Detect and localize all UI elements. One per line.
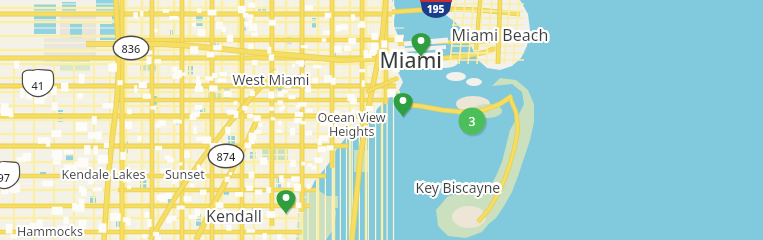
button[interactable]: Map of Miami with location markers: [0, 0, 763, 240]
